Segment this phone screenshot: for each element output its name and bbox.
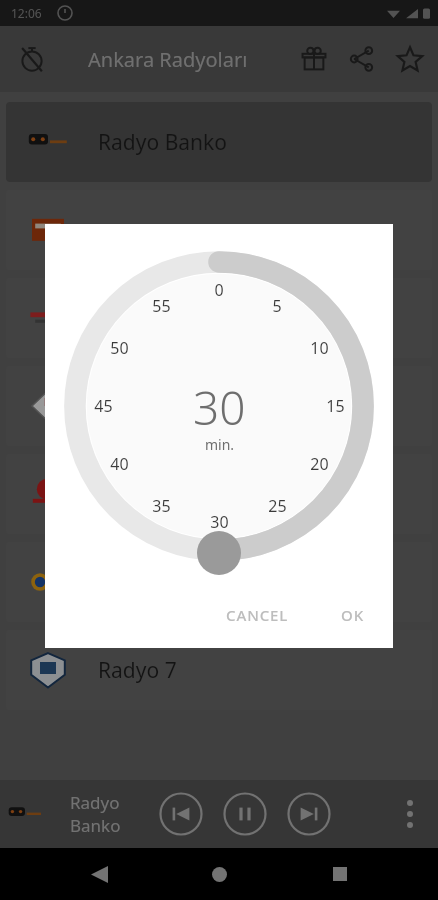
staticText: 35 xyxy=(152,495,171,517)
staticText: 0 xyxy=(214,279,224,301)
button[interactable]: OK xyxy=(327,596,379,634)
button[interactable]: Radyo 7 xyxy=(6,630,432,710)
button[interactable]: Pause xyxy=(223,792,267,836)
staticText: 40 xyxy=(110,453,129,475)
button[interactable]: CANCEL xyxy=(212,596,303,634)
staticText: Ankara Radyoları xyxy=(88,46,248,73)
button[interactable]: Gift xyxy=(290,35,338,83)
button[interactable]: Share xyxy=(338,35,386,83)
button[interactable] xyxy=(6,190,432,270)
button[interactable] xyxy=(6,542,432,622)
button[interactable]: Favorite xyxy=(386,35,434,83)
staticText: 15 xyxy=(326,395,345,417)
button[interactable]: Next xyxy=(287,792,331,836)
button[interactable]: Back xyxy=(77,852,121,896)
button[interactable] xyxy=(6,454,432,534)
staticText: 30 xyxy=(193,376,246,439)
button[interactable]: More options xyxy=(388,792,432,836)
staticText: OK xyxy=(341,605,365,625)
staticText: 25 xyxy=(268,495,287,517)
staticText: Banko xyxy=(70,814,121,837)
staticText: 5 xyxy=(272,295,282,317)
staticText: Radyo xyxy=(70,791,120,814)
staticText: 55 xyxy=(152,295,171,317)
button[interactable] xyxy=(6,278,432,358)
button[interactable]: Timer handle xyxy=(197,531,241,575)
button[interactable]: Radyo Banko xyxy=(6,102,432,182)
staticText: 30 xyxy=(210,511,229,533)
button[interactable]: Home xyxy=(197,852,241,896)
button[interactable]: Sleep timer xyxy=(8,35,56,83)
staticText: 50 xyxy=(110,337,129,359)
staticText: min. xyxy=(205,435,235,454)
staticText: CANCEL xyxy=(226,605,289,625)
staticText: 45 xyxy=(94,395,113,417)
staticText: 20 xyxy=(310,453,329,475)
button[interactable]: Previous xyxy=(159,792,203,836)
button[interactable] xyxy=(6,366,432,446)
staticText: Radyo Banko xyxy=(98,128,227,157)
staticText: Radyo 7 xyxy=(98,656,177,685)
staticText: 10 xyxy=(310,337,329,359)
staticText: 12:06 xyxy=(11,5,42,21)
button[interactable]: Recents xyxy=(318,852,362,896)
